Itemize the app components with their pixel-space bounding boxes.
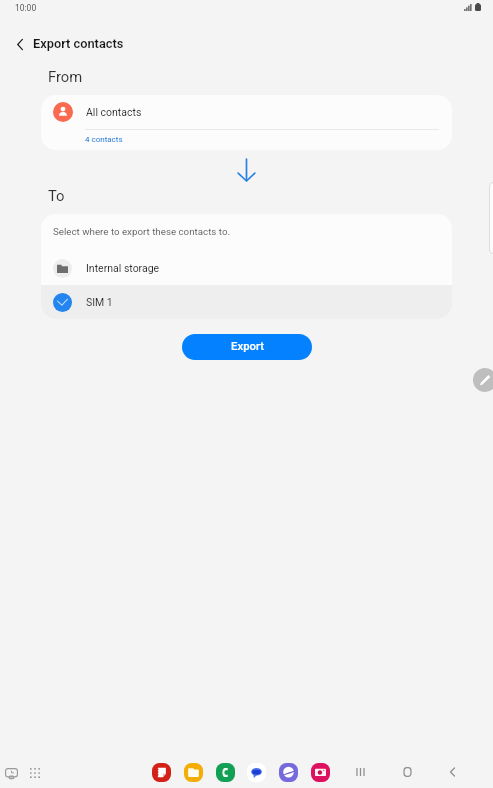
button[interactable]: Internet: [279, 763, 298, 782]
button[interactable]: Samsung Notes: [152, 763, 171, 782]
button[interactable]: Recents: [350, 762, 370, 782]
button[interactable]: Phone: [216, 763, 235, 782]
button[interactable]: Navigate up: [6, 31, 33, 58]
button[interactable]: Air command: [473, 368, 493, 392]
button[interactable]: Internal storage: [41, 251, 452, 285]
staticText: All contacts: [86, 106, 142, 118]
button[interactable]: Camera: [311, 763, 330, 782]
staticText: Export: [231, 340, 264, 353]
button[interactable]: SIM 1: [41, 285, 452, 319]
button[interactable]: Recent apps: [1, 763, 21, 783]
staticText: Export contacts: [33, 36, 124, 51]
staticText: To: [48, 187, 65, 204]
button[interactable]: Messages: [247, 763, 266, 782]
button[interactable]: Home: [397, 762, 417, 782]
button[interactable]: Back: [442, 762, 462, 782]
staticText: 10:00: [15, 3, 37, 13]
button[interactable]: 4 contacts: [41, 129, 452, 150]
button[interactable]: Export: [182, 334, 312, 360]
button[interactable]: My Files: [184, 763, 203, 782]
staticText: 4 contacts: [85, 135, 123, 144]
staticText: Select where to export these contacts to…: [53, 226, 231, 237]
button[interactable]: Apps: [25, 763, 45, 783]
button[interactable]: All contacts: [41, 95, 452, 129]
staticText: Internal storage: [86, 262, 160, 274]
staticText: From: [48, 68, 83, 85]
staticText: SIM 1: [86, 296, 113, 308]
button[interactable]: Edge panel: [489, 182, 493, 254]
